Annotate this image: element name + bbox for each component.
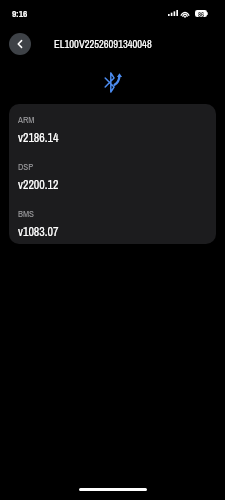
button[interactable]: Back [9, 33, 31, 55]
staticText: v1083.07 [18, 224, 59, 240]
staticText: BMS [18, 208, 34, 220]
staticText: DSP [18, 161, 34, 173]
staticText: 9:16 [12, 7, 28, 20]
staticText: v2186.14 [18, 130, 59, 146]
staticText: v2200.12 [18, 177, 59, 193]
staticText: 86 [198, 10, 205, 17]
staticText: ARM [18, 114, 35, 126]
staticText: EL100V22526091340048 [54, 37, 152, 51]
